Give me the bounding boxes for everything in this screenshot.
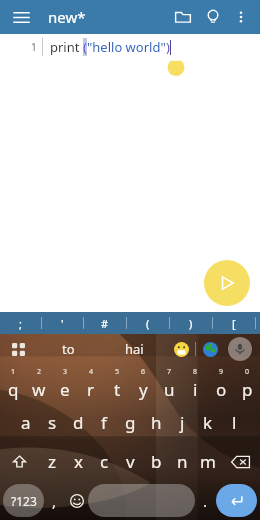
button[interactable]: hai [101,334,167,364]
button[interactable]: Voice input [224,334,256,364]
staticText: k [203,411,213,434]
staticText: 9 [219,367,224,377]
button[interactable]: 5 [104,364,130,403]
staticText: q [8,378,19,401]
staticText: [ [232,316,236,331]
staticText: f [101,411,107,434]
staticText: 1 [30,39,37,54]
button[interactable]: m [195,442,221,481]
staticText: to [62,340,75,358]
staticText: 5 [115,367,120,377]
button[interactable]: Space [88,484,195,517]
staticText: ( [146,316,150,331]
button[interactable]: [ [213,312,255,334]
button[interactable]: Enter [216,484,257,517]
staticText: e [60,378,70,401]
button[interactable]: 1 [0,364,26,403]
staticText: ; [19,316,22,331]
staticText: ) [166,38,170,56]
staticText: x [74,450,83,473]
button[interactable]: Toolbar [0,334,36,364]
staticText: "hello world" [87,38,166,56]
button[interactable]: j [169,403,195,442]
staticText: j [180,411,185,434]
staticText: 2 [37,367,42,377]
button[interactable]: n [169,442,195,481]
button[interactable]: c [91,442,117,481]
button[interactable]: Emoji keyboard [65,484,88,517]
staticText: ( [83,38,87,56]
button[interactable]: Open file [168,2,198,32]
button[interactable]: b [143,442,169,481]
staticText: p [242,378,253,401]
staticText: h [151,411,162,434]
button[interactable]: 9 [208,364,234,403]
staticText: ?123 [11,493,37,509]
button[interactable]: ' [42,312,83,334]
staticText: d [73,411,84,434]
button[interactable]: x [65,442,91,481]
button[interactable]: v [117,442,143,481]
staticText: n [177,450,188,473]
staticText: y [139,378,148,401]
staticText: t [114,378,121,401]
button[interactable]: 3 [52,364,78,403]
button[interactable]: Hints [198,2,228,32]
staticText: w [32,378,46,401]
staticText: z [48,450,56,473]
button[interactable]: 0 [234,364,260,403]
button[interactable]: # [84,312,126,334]
staticText: 3 [63,367,68,377]
staticText: b [151,450,162,473]
button[interactable]: f [91,403,117,442]
button[interactable]: k [195,403,221,442]
button[interactable]: s [39,403,65,442]
button[interactable]: ( [127,312,169,334]
staticText: ) [189,316,193,331]
staticText: a [21,411,31,434]
staticText: ' [61,316,64,331]
button[interactable]: 8 [182,364,208,403]
button[interactable]: l [221,403,247,442]
staticText: r [87,378,95,401]
staticText: 4 [89,367,94,377]
button[interactable]: , [44,484,65,517]
staticText: # [101,316,109,331]
button[interactable]: a [13,403,39,442]
button[interactable]: ) [170,312,212,334]
staticText: i [193,378,198,401]
button[interactable]: 7 [156,364,182,403]
button[interactable]: 2 [26,364,52,403]
staticText: print [50,38,83,56]
staticText: g [125,411,136,434]
staticText: 0 [245,367,250,377]
button[interactable]: h [143,403,169,442]
button[interactable]: Shift [0,442,39,481]
staticText: s [48,411,57,434]
button[interactable]: Emoji [167,334,195,364]
button[interactable]: 4 [78,364,104,403]
button[interactable]: d [65,403,91,442]
staticText: o [216,378,227,401]
staticText: c [100,450,109,473]
button[interactable]: . [195,484,216,517]
button[interactable]: Run [204,260,250,306]
staticText: 8 [193,367,198,377]
button[interactable]: 6 [130,364,156,403]
staticText: hai [125,340,144,358]
button[interactable]: to [36,334,101,364]
button[interactable]: Change language [196,334,224,364]
staticText: 7 [167,367,172,377]
button[interactable]: More options [228,4,254,30]
button[interactable]: ?123 [3,484,44,517]
button[interactable]: ; [0,312,41,334]
button[interactable]: g [117,403,143,442]
button[interactable]: z [39,442,65,481]
staticText: 6 [141,367,146,377]
staticText: v [126,450,135,473]
staticText: new* [48,7,86,27]
staticText: u [164,378,175,401]
button[interactable]: Open navigation menu [6,2,36,32]
staticText: l [232,411,237,434]
button[interactable]: Backspace [221,442,260,481]
